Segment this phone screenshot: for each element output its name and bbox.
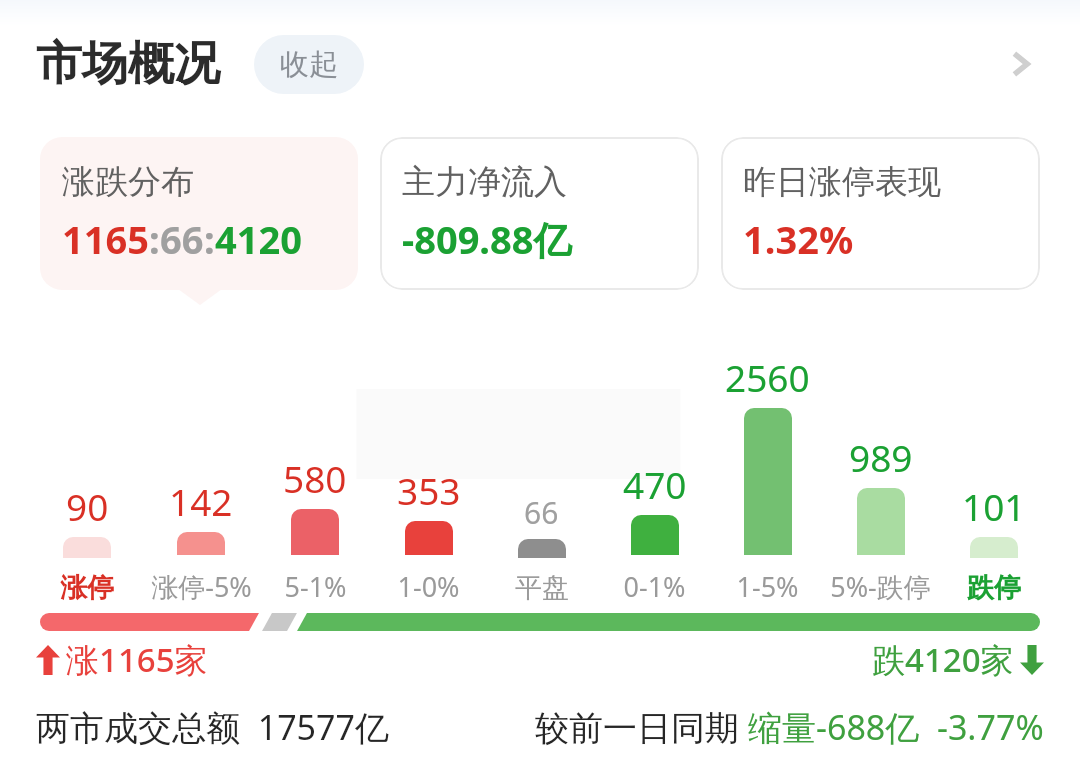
staticText: 缩量-688亿 -3.77% (748, 704, 1044, 750)
staticText: 跌停 (967, 571, 1021, 605)
button[interactable]: 昨日涨停表现 (721, 137, 1040, 290)
staticText: 收起 (280, 46, 338, 83)
staticText: 5%-跌停 (830, 568, 931, 605)
staticText: 66 (160, 213, 204, 265)
button[interactable]: More (990, 34, 1050, 94)
staticText: 2560 (725, 352, 810, 402)
staticText: 66 (524, 492, 559, 533)
staticText: -809.88亿 (402, 213, 572, 265)
staticText: : (149, 213, 160, 265)
staticText: 1165 (62, 213, 149, 265)
staticText: 1-0% (397, 568, 460, 605)
staticText: 涨停 (60, 571, 114, 605)
button[interactable]: 涨跌分布 (40, 137, 358, 290)
staticText: 1.32% (743, 213, 854, 265)
staticText: 5-1% (284, 568, 347, 605)
staticText: 涨1165家 (66, 637, 208, 682)
staticText: 90 (66, 481, 109, 531)
button[interactable]: 主力净流入 (380, 137, 699, 290)
staticText: 市场概况 (36, 35, 220, 93)
staticText: 较前一日同期 (535, 704, 748, 750)
staticText: 4120 (215, 213, 302, 265)
staticText: 主力净流入 (402, 161, 567, 203)
staticText: 涨停-5% (151, 568, 252, 605)
staticText: 101 (962, 481, 1026, 531)
staticText: 353 (397, 465, 461, 515)
staticText: 1-5% (736, 568, 799, 605)
staticText: 580 (283, 453, 347, 503)
staticText: 142 (169, 476, 233, 526)
staticText: 两市成交总额 17577亿 (36, 704, 389, 750)
staticText: 989 (849, 432, 913, 482)
staticText: : (204, 213, 215, 265)
button[interactable]: 收起 (254, 35, 364, 94)
staticText: 470 (623, 459, 687, 509)
staticText: 平盘 (515, 571, 569, 605)
staticText: 0-1% (623, 568, 686, 605)
staticText: 昨日涨停表现 (743, 161, 941, 203)
staticText: 跌4120家 (872, 637, 1014, 682)
staticText: 涨跌分布 (62, 161, 194, 203)
